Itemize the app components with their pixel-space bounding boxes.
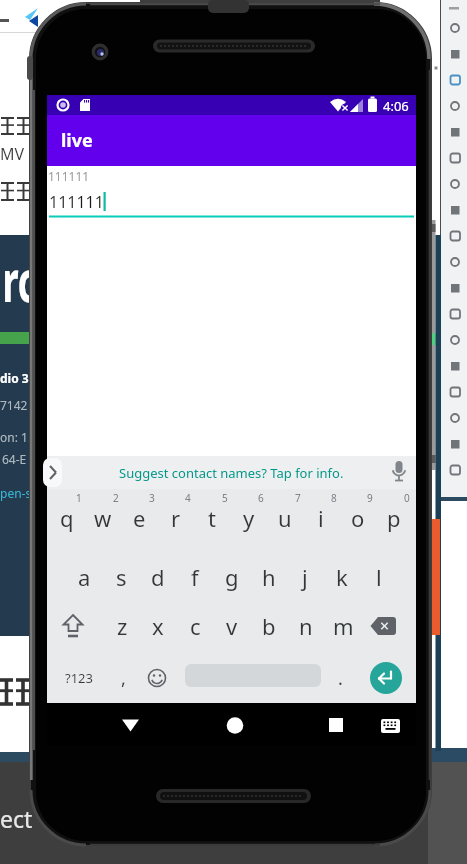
staticText: y <box>243 503 255 533</box>
staticText: 9 <box>367 491 373 505</box>
staticText: z <box>117 611 128 641</box>
button[interactable]: . <box>327 652 353 704</box>
staticText: t <box>208 503 216 533</box>
button[interactable]: z <box>104 600 140 652</box>
button[interactable] <box>387 456 416 489</box>
button[interactable]: i <box>303 494 339 541</box>
staticText: k <box>336 562 348 592</box>
button[interactable]: p <box>376 494 412 541</box>
button[interactable] <box>377 703 407 745</box>
staticText: x <box>152 611 164 641</box>
staticText: 4:06 <box>383 97 409 115</box>
button[interactable]: o <box>340 494 376 541</box>
button[interactable] <box>55 600 99 652</box>
button[interactable]: u <box>267 494 303 541</box>
button[interactable] <box>47 456 65 489</box>
button[interactable]: l <box>361 551 397 603</box>
staticText: r <box>171 503 181 533</box>
staticText: 5 <box>222 491 228 505</box>
staticText: w <box>94 503 112 533</box>
staticText: i <box>318 503 324 533</box>
button[interactable]: d <box>140 551 176 603</box>
button[interactable]: b <box>251 600 287 652</box>
staticText: rc <box>2 240 37 319</box>
staticText: q <box>60 503 74 533</box>
staticText: on: 1. <box>0 429 32 445</box>
button[interactable]: c <box>177 600 213 652</box>
button[interactable]: y <box>231 494 267 541</box>
staticText: h <box>262 562 276 592</box>
staticText: l <box>376 562 382 592</box>
staticText: 64-E <box>2 451 27 467</box>
button[interactable]: r <box>158 494 194 541</box>
staticText: pen-s <box>0 485 32 501</box>
staticText: 111111 <box>49 191 104 213</box>
button[interactable] <box>110 703 150 745</box>
staticText: b <box>262 611 276 641</box>
staticText: 1 <box>76 491 82 505</box>
button[interactable]: s <box>103 551 139 603</box>
staticText: f <box>191 562 199 592</box>
staticText: . <box>338 666 343 691</box>
button[interactable]: t <box>194 494 230 541</box>
staticText: n <box>299 611 313 641</box>
staticText: 7 <box>295 491 301 505</box>
button[interactable]: f <box>177 551 213 603</box>
button[interactable]: q <box>49 494 85 541</box>
button[interactable] <box>215 703 255 745</box>
staticText: v <box>226 611 238 641</box>
staticText: , <box>121 666 126 691</box>
staticText: M <box>431 107 444 126</box>
staticText: c <box>190 611 201 641</box>
staticText: g <box>225 562 239 592</box>
button[interactable] <box>365 600 409 652</box>
button[interactable] <box>370 662 402 694</box>
button[interactable]: a <box>66 551 102 603</box>
staticText: dio 3 <box>0 370 29 386</box>
button[interactable] <box>47 166 416 222</box>
button[interactable]: g <box>214 551 250 603</box>
staticText: 7142 <box>0 397 28 413</box>
staticText: 4 <box>185 491 191 505</box>
staticText: s <box>116 562 127 592</box>
button[interactable]: , <box>110 652 136 704</box>
staticText: o <box>351 503 365 533</box>
staticText: ect <box>0 803 33 834</box>
button[interactable]: j <box>287 551 323 603</box>
staticText: 8 <box>331 491 337 505</box>
staticText: 3 <box>149 491 155 505</box>
button[interactable]: k <box>324 551 360 603</box>
staticText: Suggest contact names? Tap for info. <box>119 464 344 482</box>
staticText: a <box>78 562 91 592</box>
staticText: live <box>61 128 93 153</box>
button[interactable]: n <box>288 600 324 652</box>
button[interactable]: Suggest contact names? Tap for info. <box>47 456 416 489</box>
staticText: 111111 <box>48 168 90 184</box>
button[interactable] <box>316 703 356 745</box>
staticText: m <box>333 611 354 641</box>
staticText: 6 <box>258 491 264 505</box>
button[interactable] <box>143 652 173 704</box>
button[interactable]: w <box>85 494 121 541</box>
staticText: p <box>387 503 401 533</box>
button[interactable]: live <box>47 115 416 166</box>
staticText: 2 <box>113 491 119 505</box>
staticText: d <box>151 562 165 592</box>
staticText: u <box>278 503 292 533</box>
staticText: e <box>133 503 146 533</box>
staticText: j <box>302 562 308 592</box>
staticText: 0 <box>404 491 410 505</box>
staticText: MV <box>0 143 25 165</box>
staticText: ?123 <box>65 669 93 687</box>
button[interactable]: m <box>325 600 361 652</box>
button[interactable]: x <box>140 600 176 652</box>
button[interactable]: h <box>251 551 287 603</box>
button[interactable]: ?123 <box>56 652 102 704</box>
button[interactable]: v <box>214 600 250 652</box>
button[interactable]: e <box>121 494 157 541</box>
